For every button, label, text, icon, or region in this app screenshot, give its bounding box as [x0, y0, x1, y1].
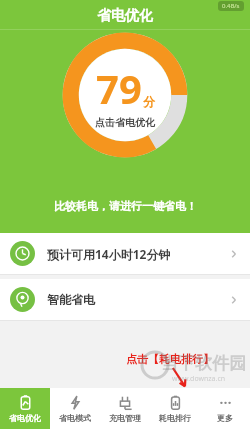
- staticText: 省电优化: [9, 413, 41, 423]
- button[interactable]: 预计可用14小时12分钟: [0, 233, 250, 274]
- button[interactable]: 充电管理: [100, 388, 150, 429]
- staticText: 点击【耗电排行】: [126, 352, 214, 366]
- button[interactable]: 点击省电优化: [55, 25, 195, 165]
- staticText: 耗电排行: [159, 413, 191, 423]
- staticText: 省电模式: [59, 413, 91, 423]
- button[interactable]: 智能省电: [0, 279, 250, 320]
- button[interactable]: 更多: [200, 388, 250, 429]
- staticText: 省电优化: [97, 7, 153, 25]
- staticText: 79: [96, 61, 142, 115]
- staticText: 分: [143, 94, 155, 109]
- staticText: 比较耗电，请进行一键省电！: [54, 199, 197, 213]
- button[interactable]: 省电优化: [0, 388, 50, 429]
- staticText: 智能省电: [47, 292, 228, 307]
- button[interactable]: 省电模式: [50, 388, 100, 429]
- staticText: 点击省电优化: [95, 116, 155, 129]
- staticText: 当下软件园: [161, 353, 246, 374]
- staticText: 0.4B/s: [222, 2, 240, 10]
- staticText: 更多: [217, 413, 233, 423]
- button[interactable]: 耗电排行: [150, 388, 200, 429]
- staticText: 预计可用14小时12分钟: [47, 246, 228, 262]
- staticText: 充电管理: [109, 413, 141, 423]
- staticText: www.downza.cn: [172, 374, 226, 384]
